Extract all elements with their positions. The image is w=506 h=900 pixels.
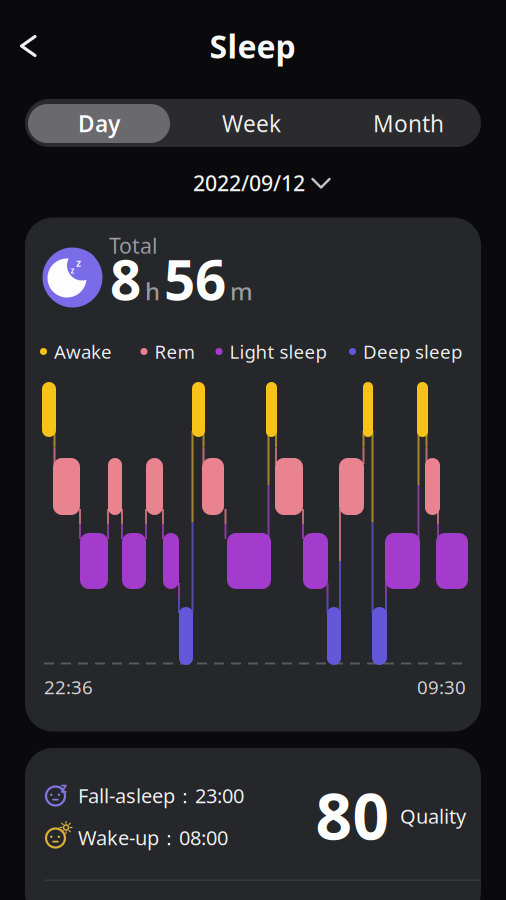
button[interactable]: Month — [338, 101, 478, 145]
button[interactable]: Day — [28, 104, 170, 143]
staticText: Total — [109, 231, 158, 260]
staticText: 22:36 — [44, 675, 93, 699]
staticText: m — [230, 275, 253, 307]
staticText: Awake — [54, 339, 112, 364]
staticText: 80 — [315, 772, 389, 857]
staticText: 56 — [164, 243, 226, 315]
staticText: Deep sleep — [363, 339, 462, 364]
staticText: z — [76, 255, 81, 270]
staticText: Fall-asleep：23:00 — [78, 782, 244, 809]
button[interactable] — [7, 24, 51, 68]
staticText: h — [145, 275, 160, 307]
staticText: Day — [78, 108, 120, 138]
staticText: z — [60, 779, 67, 796]
staticText: 2022/09/12 — [193, 169, 305, 197]
staticText: Light sleep — [229, 339, 326, 364]
staticText: 09:30 — [417, 675, 466, 699]
staticText: Month — [373, 108, 444, 138]
staticText: Rem — [154, 339, 194, 364]
staticText: z — [70, 265, 74, 276]
staticText: Wake-up：08:00 — [78, 824, 228, 851]
button[interactable]: Week — [181, 101, 321, 145]
staticText: Quality — [400, 803, 466, 829]
button[interactable]: 2022/09/12 — [180, 166, 344, 200]
staticText: 8 — [110, 243, 141, 315]
staticText: Week — [222, 108, 281, 138]
staticText: Sleep — [209, 25, 295, 67]
